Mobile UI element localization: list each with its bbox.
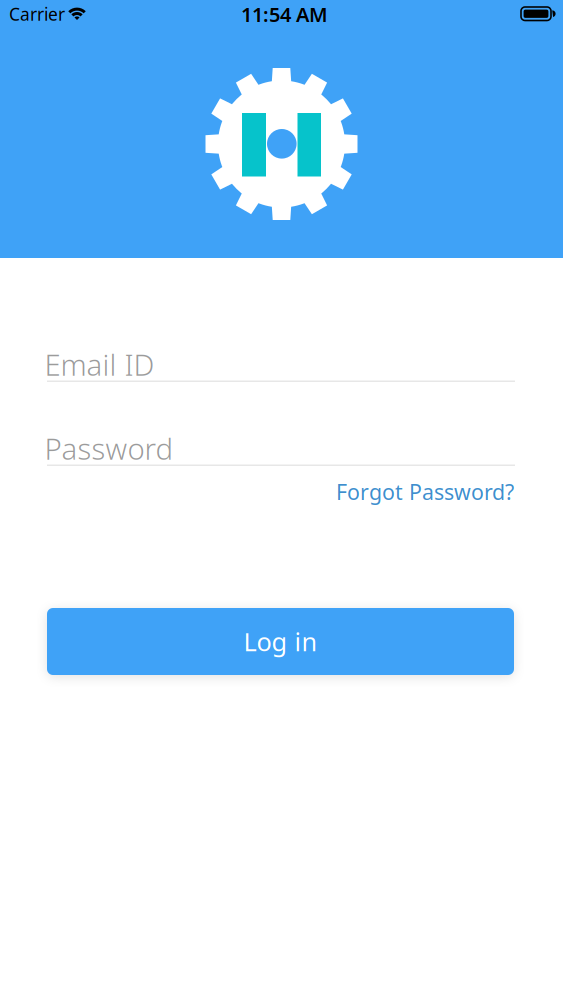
- button[interactable]: Forgot Password?: [336, 477, 514, 506]
- staticText: 11:54 AM: [241, 1, 328, 28]
- staticText: Password: [44, 429, 173, 468]
- staticText: Email ID: [44, 345, 154, 384]
- staticText: Forgot Password?: [336, 477, 514, 506]
- button[interactable]: Log in: [47, 608, 514, 675]
- staticText: Carrier: [9, 2, 65, 25]
- staticText: Log in: [243, 625, 317, 658]
